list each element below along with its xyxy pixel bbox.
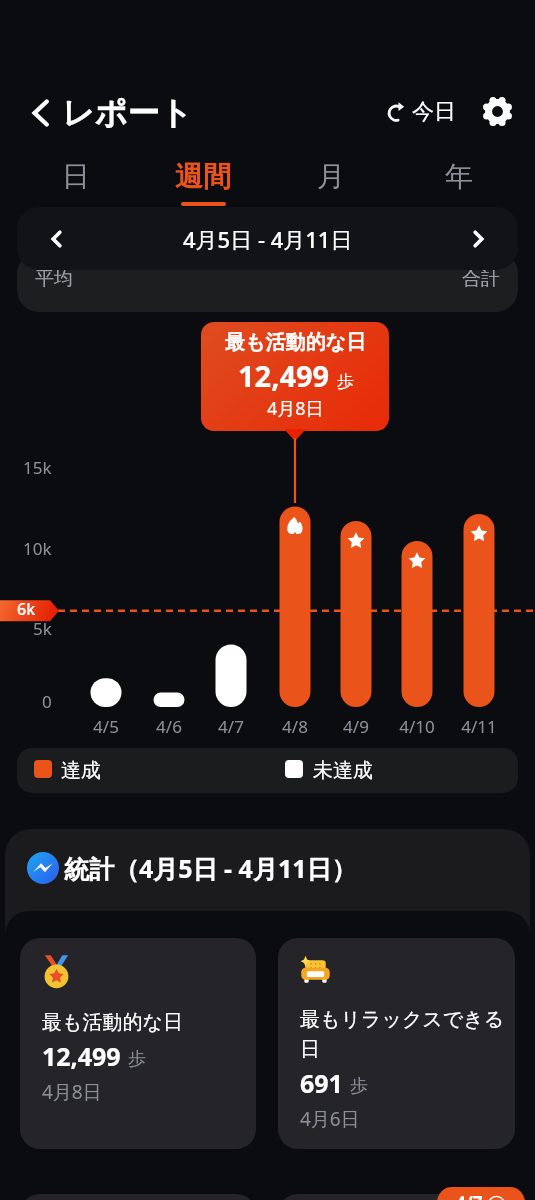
staticText: 12,499 bbox=[42, 1039, 121, 1073]
staticText: 4/6 bbox=[156, 715, 182, 738]
staticText: 歩 bbox=[337, 371, 354, 392]
button[interactable]: Next week bbox=[438, 207, 518, 270]
button[interactable]: Back bbox=[18, 90, 64, 136]
staticText: 5k bbox=[33, 617, 52, 640]
staticText: 年 bbox=[445, 159, 473, 194]
staticText: 4/9 bbox=[343, 715, 369, 738]
button[interactable]: 年 bbox=[395, 156, 523, 208]
staticText: 4/5 bbox=[93, 715, 119, 738]
staticText: レポート bbox=[62, 93, 193, 133]
staticText: 歩 bbox=[350, 1075, 368, 1098]
staticText: 691 bbox=[300, 1066, 343, 1100]
staticText: 最も活動的な日 bbox=[42, 1010, 183, 1035]
button[interactable]: Previous week bbox=[17, 207, 97, 270]
staticText: 未達成 bbox=[313, 758, 373, 783]
button[interactable]: 最もリラックスできる日 bbox=[278, 938, 515, 1149]
staticText: 日 bbox=[62, 159, 90, 194]
staticText: 4月6日 bbox=[300, 1106, 360, 1132]
button[interactable]: 今日 bbox=[388, 92, 456, 132]
staticText: 4/11 bbox=[461, 715, 497, 738]
staticText: 4/7 ◯ bbox=[456, 1191, 506, 1200]
staticText: 歩 bbox=[128, 1048, 146, 1071]
button[interactable]: 日 bbox=[12, 156, 139, 208]
staticText: 達成 bbox=[61, 758, 101, 783]
staticText: 月 bbox=[317, 159, 345, 194]
button[interactable]: Settings bbox=[475, 89, 519, 133]
staticText: 最も活動的な日 bbox=[225, 330, 366, 355]
staticText: 週間 bbox=[175, 159, 231, 194]
button[interactable]: 平均 bbox=[17, 252, 518, 312]
staticText: 今日 bbox=[412, 98, 456, 126]
staticText: 最もリラックスできる日 bbox=[300, 1007, 509, 1062]
button[interactable]: 月 bbox=[267, 156, 395, 208]
staticText: 平均 bbox=[35, 267, 73, 291]
staticText: 4/7 bbox=[218, 715, 244, 738]
staticText: 4月5日 - 4月11日 bbox=[183, 224, 353, 254]
staticText: 12,499 bbox=[238, 356, 330, 395]
staticText: 4月8日 bbox=[42, 1079, 102, 1105]
staticText: 4/10 bbox=[399, 715, 435, 738]
button[interactable]: 最も活動的な日 bbox=[201, 322, 389, 431]
staticText: 統計（4月5日 - 4月11日） bbox=[64, 851, 357, 885]
staticText: 合計 bbox=[462, 267, 500, 291]
staticText: 4月8日 bbox=[267, 396, 324, 421]
staticText: 15k bbox=[23, 456, 52, 479]
staticText: 0 bbox=[42, 690, 52, 713]
staticText: 6k bbox=[17, 598, 36, 620]
button[interactable]: 週間 bbox=[139, 156, 267, 208]
button[interactable]: 最も活動的な日 bbox=[20, 938, 256, 1149]
staticText: 10k bbox=[23, 537, 52, 560]
staticText: 4/8 bbox=[282, 715, 308, 738]
button[interactable]: 達成 bbox=[17, 748, 518, 793]
